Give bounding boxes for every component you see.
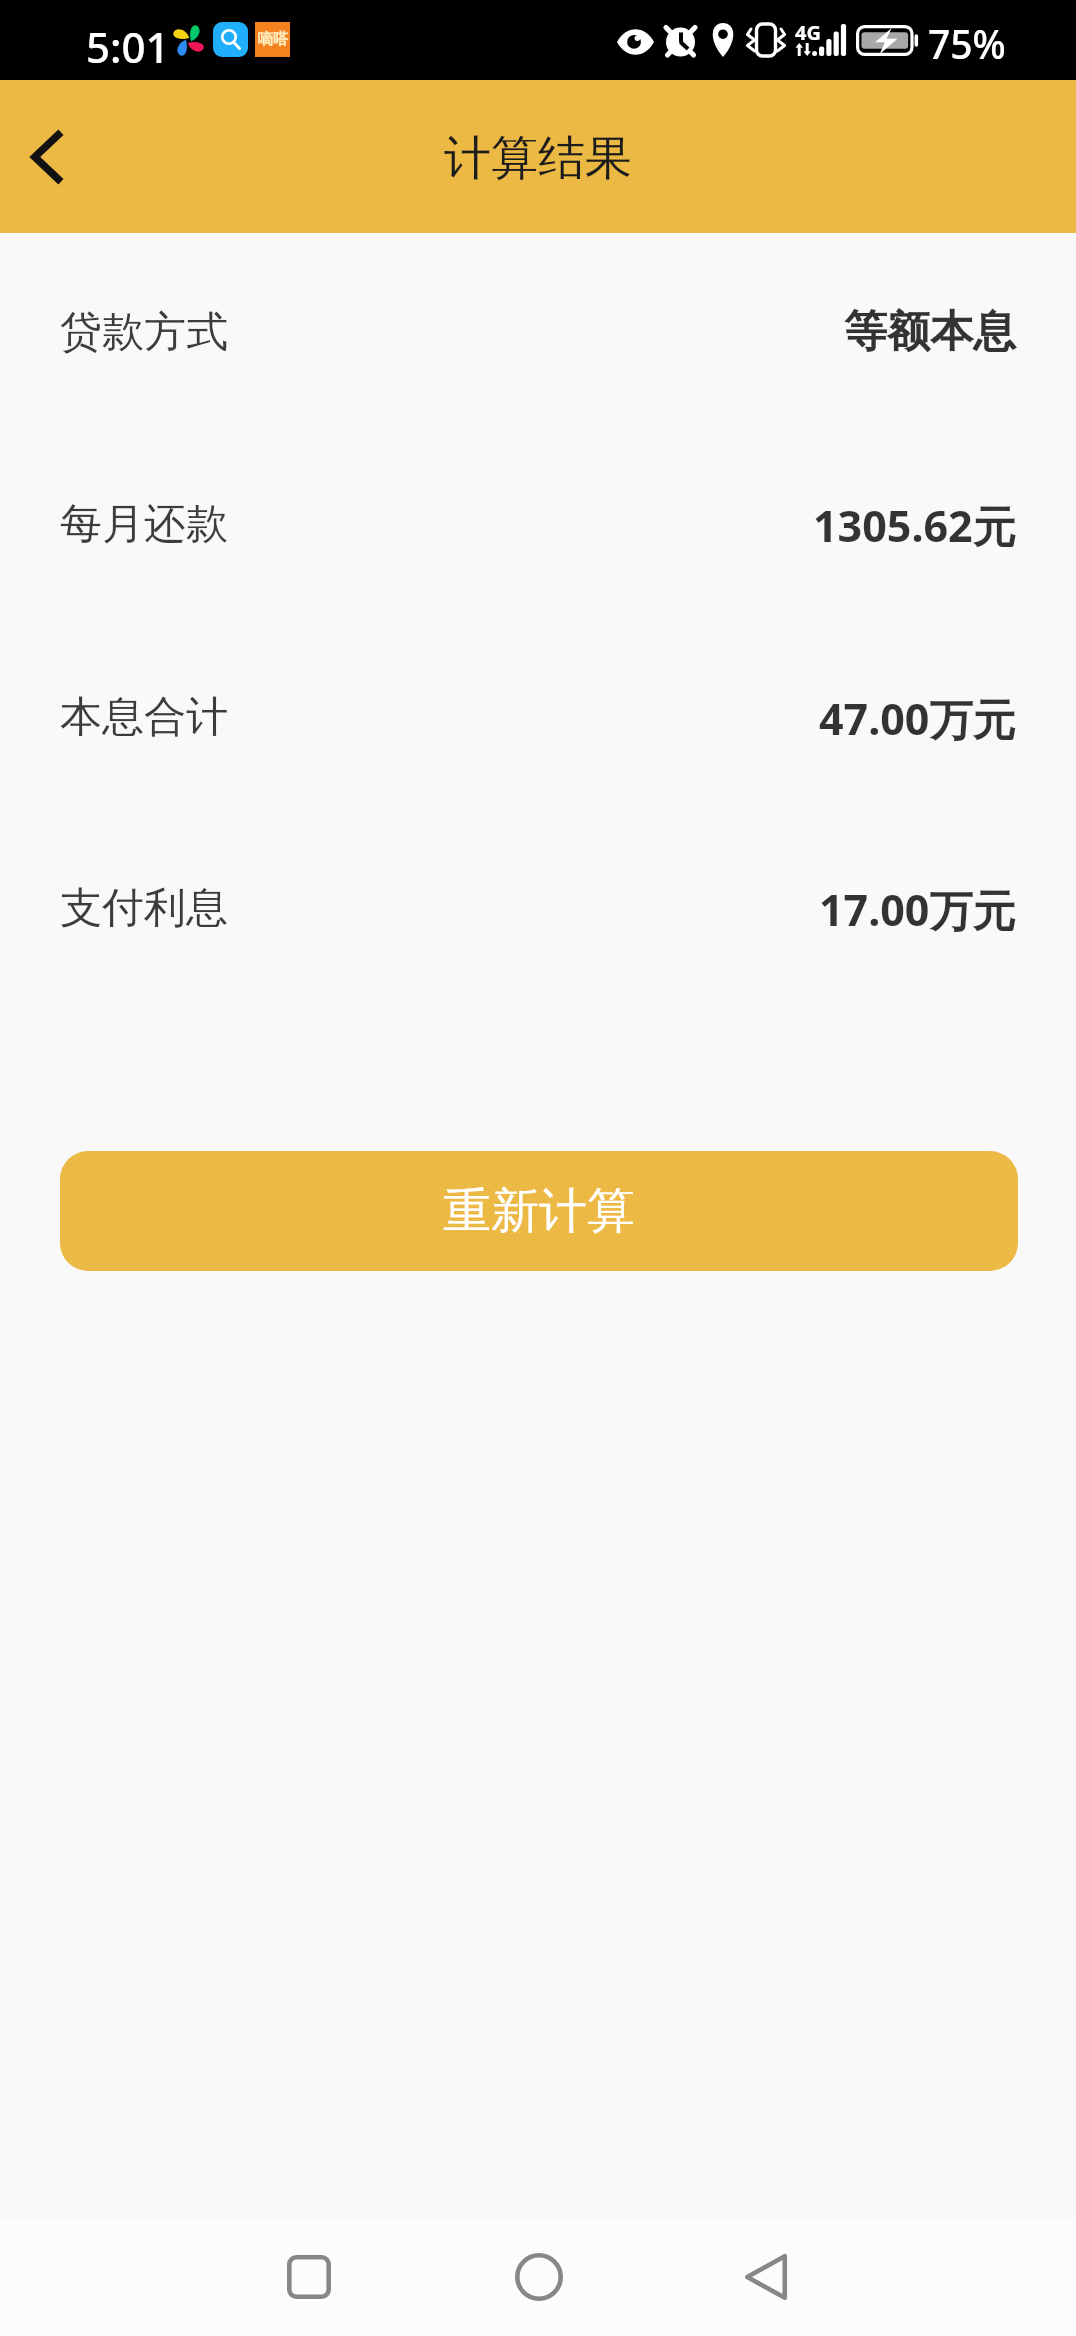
staticText: 47.00万元 xyxy=(819,689,1016,745)
staticText: 重新计算 xyxy=(443,1181,635,1241)
staticText: 每月还款 xyxy=(60,498,228,551)
button[interactable]: 每月还款 xyxy=(60,496,1016,552)
staticText: 17.00万元 xyxy=(819,880,1016,936)
staticText: 贷款方式 xyxy=(60,306,228,359)
button[interactable]: 支付利息 xyxy=(60,880,1016,936)
staticText: 本息合计 xyxy=(60,691,228,744)
button[interactable]: 重新计算 xyxy=(60,1151,1018,1271)
button[interactable]: 本息合计 xyxy=(60,689,1016,745)
staticText: 5:01 xyxy=(86,18,170,75)
button[interactable]: Back xyxy=(6,112,86,202)
button[interactable]: 贷款方式 xyxy=(60,304,1016,360)
staticText: 75% xyxy=(928,17,1006,70)
staticText: 1305.62元 xyxy=(813,496,1016,552)
button[interactable]: Home xyxy=(489,2227,589,2327)
button[interactable]: Recent apps xyxy=(259,2227,359,2327)
staticText: 等额本息 xyxy=(844,305,1016,359)
staticText: 支付利息 xyxy=(60,882,228,935)
staticText: 嘀嗒 xyxy=(258,30,288,49)
button[interactable]: Back xyxy=(718,2227,818,2327)
staticText: 计算结果 xyxy=(444,129,632,188)
staticText: 4G xyxy=(795,19,821,46)
